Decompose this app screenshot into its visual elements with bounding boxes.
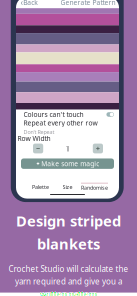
button[interactable]: Colours can't touch xyxy=(16,109,119,119)
staticText: 1 xyxy=(65,143,70,154)
staticText: Repeat every other row xyxy=(23,118,97,127)
staticText: Randomise xyxy=(81,184,108,191)
button[interactable]: Generate Pattern xyxy=(60,0,119,8)
button[interactable]: Size xyxy=(54,183,81,190)
button[interactable]: Increase row width xyxy=(93,144,103,153)
button[interactable]: ✦ xyxy=(21,158,114,169)
staticText: ✦ xyxy=(36,161,40,167)
staticText: Generate Pattern xyxy=(60,0,115,7)
staticText: Crochet Studio will calculate the xyxy=(8,263,128,274)
staticText: Size xyxy=(62,183,72,190)
staticText: Palette xyxy=(32,183,49,190)
staticText: Row Width xyxy=(17,134,50,143)
button[interactable]: ‹ xyxy=(16,0,41,8)
button[interactable]: Repeat every other row xyxy=(16,119,119,134)
staticText: yarn required and give you a xyxy=(15,276,122,287)
button[interactable]: Decrease row width xyxy=(33,144,43,153)
staticText: Colours can't touch xyxy=(23,110,83,119)
staticText: written pattern xyxy=(40,289,97,296)
staticText: Don't Repeat xyxy=(23,128,54,136)
staticText: ‹ xyxy=(20,0,22,8)
staticText: Back xyxy=(23,0,38,7)
button[interactable]: Palette xyxy=(27,183,54,190)
staticText: Design striped xyxy=(16,211,121,231)
button[interactable]: Randomise xyxy=(81,183,108,190)
staticText: blankets xyxy=(37,234,100,254)
staticText: Make some magic xyxy=(41,159,99,168)
